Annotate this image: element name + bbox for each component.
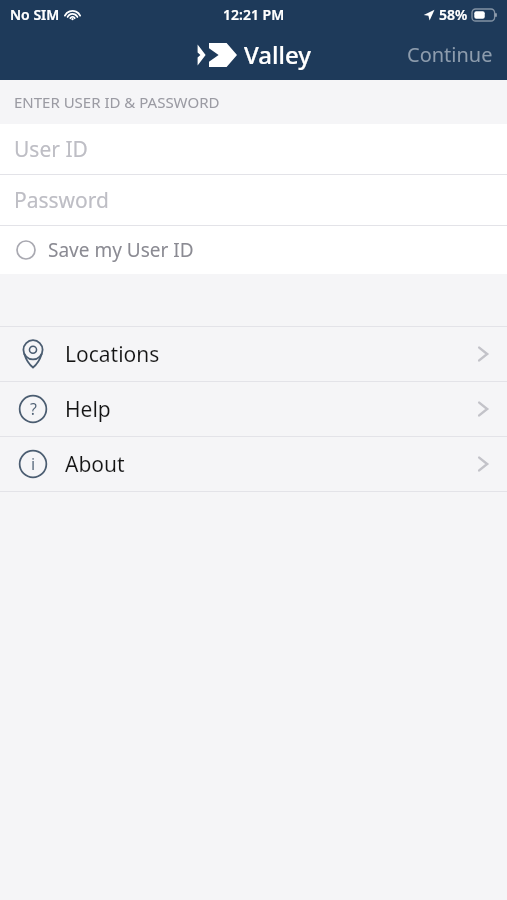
staticText: No SIM — [10, 5, 60, 24]
staticText: Continue — [407, 41, 493, 68]
staticText: i — [31, 453, 36, 475]
staticText: Password — [14, 186, 109, 215]
staticText: ENTER USER ID & PASSWORD — [14, 92, 220, 112]
staticText: Save my User ID — [48, 237, 194, 263]
staticText: User ID — [14, 135, 88, 164]
button[interactable]: ? — [0, 382, 507, 436]
button[interactable]: Continue — [393, 30, 507, 79]
staticText: 12:21 PM — [223, 5, 285, 24]
staticText: ? — [30, 398, 37, 420]
staticText: Valley — [244, 38, 311, 71]
other: Valley logo — [197, 43, 237, 67]
button[interactable]: Password — [0, 175, 507, 225]
staticText: Help — [65, 395, 477, 424]
button[interactable]: i — [0, 437, 507, 491]
staticText: About — [65, 450, 477, 479]
button[interactable]: Save my User ID — [0, 226, 507, 274]
staticText: Locations — [65, 340, 477, 369]
button[interactable]: User ID — [0, 124, 507, 174]
button[interactable]: Locations — [0, 327, 507, 381]
staticText: 58% — [439, 5, 468, 24]
